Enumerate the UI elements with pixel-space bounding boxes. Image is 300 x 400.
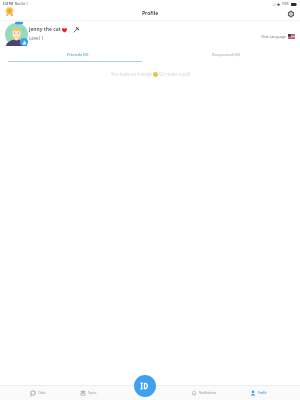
- staticText: Notifications: [199, 391, 217, 395]
- staticText: Go make a pal!: [158, 71, 190, 77]
- button[interactable]: Chat Language: [261, 34, 295, 39]
- staticText: Mon Oct 1: [15, 2, 28, 6]
- staticText: Topics: [88, 391, 97, 395]
- staticText: Friends (0): [67, 52, 89, 58]
- staticText: Chat Language: [261, 34, 286, 39]
- staticText: Profile: [142, 10, 159, 17]
- staticText: Chats: [38, 391, 46, 395]
- button[interactable]: Topics: [80, 385, 97, 400]
- staticText: 100%: [282, 2, 289, 6]
- button[interactable]: Settings: [285, 8, 296, 19]
- button[interactable]: Requested (0): [158, 49, 293, 61]
- staticText: 5:33 PM: [3, 2, 13, 6]
- button[interactable]: Profile: [250, 385, 267, 400]
- staticText: Requested (0): [212, 52, 240, 58]
- button[interactable]: Notifications: [191, 385, 217, 400]
- staticText: jenny the cat: [29, 26, 61, 33]
- button[interactable]: Edit profile name: [72, 26, 79, 33]
- staticText: You have no friends: [111, 71, 153, 77]
- button[interactable]: Friends (0): [10, 49, 145, 61]
- staticText: Level 1: [29, 35, 44, 41]
- button[interactable]: New chat: [134, 375, 156, 397]
- staticText: Profile: [258, 391, 267, 395]
- button[interactable]: Chats: [30, 385, 46, 400]
